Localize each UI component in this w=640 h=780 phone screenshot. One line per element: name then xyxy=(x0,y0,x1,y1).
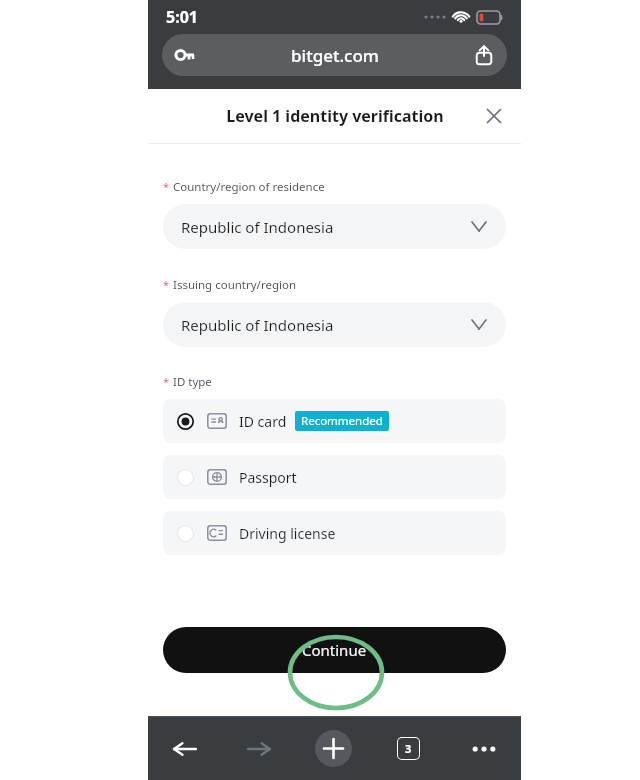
button[interactable]: Secure connection xyxy=(162,34,507,76)
button[interactable]: More options xyxy=(446,717,521,780)
button[interactable]: Driving license xyxy=(163,511,506,555)
staticText: Driving license xyxy=(239,524,336,543)
staticText: Level 1 identity verification xyxy=(226,105,444,127)
button[interactable]: New tab xyxy=(296,717,371,780)
staticText: Recommended xyxy=(301,413,383,429)
staticText: bitget.com xyxy=(291,44,379,67)
other: Share xyxy=(473,44,495,66)
button[interactable]: Continue xyxy=(163,627,506,673)
staticText: Country/region of residence xyxy=(173,179,325,195)
staticText: * xyxy=(163,374,170,389)
button[interactable]: ID card xyxy=(163,399,506,443)
button[interactable]: Back xyxy=(148,717,222,780)
button[interactable]: Passport xyxy=(163,455,506,499)
button[interactable]: Forward xyxy=(222,717,296,780)
staticText: 3 xyxy=(405,741,412,756)
staticText: Republic of Indonesia xyxy=(181,217,334,237)
staticText: 5:01 xyxy=(166,6,198,28)
staticText: Continue xyxy=(302,640,367,660)
staticText: Republic of Indonesia xyxy=(181,315,334,335)
button[interactable]: Close xyxy=(479,101,509,131)
button[interactable]: Tabs xyxy=(371,717,446,780)
button[interactable]: Republic of Indonesia xyxy=(163,204,506,249)
staticText: * xyxy=(163,179,170,194)
staticText: ID card xyxy=(239,412,287,431)
staticText: ID type xyxy=(173,374,212,390)
other: Secure connection xyxy=(174,42,200,68)
staticText: Passport xyxy=(239,468,297,487)
staticText: Issuing country/region xyxy=(173,277,297,293)
staticText: * xyxy=(163,277,170,292)
button[interactable]: Republic of Indonesia xyxy=(163,302,506,347)
